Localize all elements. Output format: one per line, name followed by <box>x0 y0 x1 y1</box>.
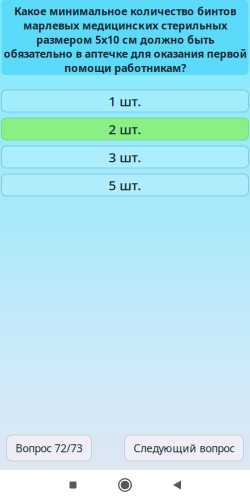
button[interactable]: Home <box>99 470 151 500</box>
staticText: Следующий вопрос <box>133 441 234 455</box>
staticText: 3 шт. <box>108 148 141 166</box>
button[interactable]: 3 шт. <box>1 146 248 168</box>
button[interactable]: Back <box>151 470 203 500</box>
button[interactable]: 1 шт. <box>1 90 248 112</box>
staticText: Вопрос 72/73 <box>15 441 82 455</box>
staticText: 5 шт. <box>108 176 141 194</box>
button[interactable]: 2 шт. <box>1 118 248 140</box>
staticText: Какое минимальное количество бинтов марл… <box>3 4 246 75</box>
staticText: 1 шт. <box>108 92 141 110</box>
button[interactable]: 5 шт. <box>1 174 248 196</box>
staticText: 2 шт. <box>108 120 141 138</box>
button[interactable]: Вопрос 72/73 <box>6 435 91 461</box>
button[interactable]: Recent apps <box>47 470 99 500</box>
button[interactable]: Следующий вопрос <box>124 435 243 461</box>
